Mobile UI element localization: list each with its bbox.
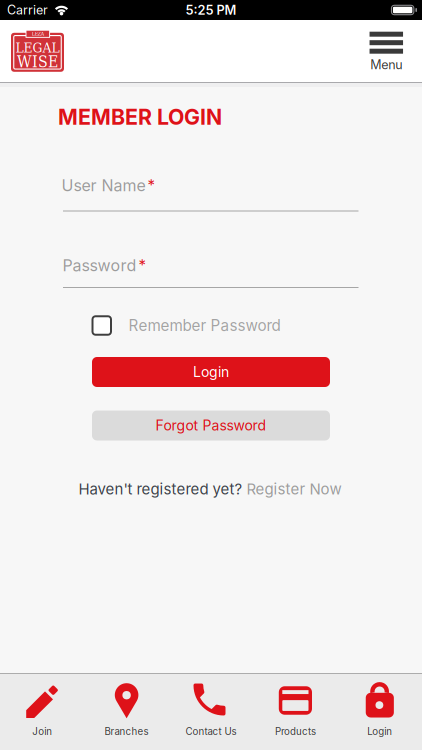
staticText: LEGAL — [15, 40, 59, 56]
staticText: Products — [275, 725, 316, 737]
staticText: Login — [193, 363, 229, 380]
staticText: Contact Us — [185, 725, 236, 737]
staticText: User Name — [61, 176, 145, 195]
staticText: 5:25 PM — [185, 2, 236, 18]
staticText: Login — [367, 725, 392, 737]
staticText: Remember Password — [128, 316, 280, 335]
staticText: Branches — [105, 725, 149, 737]
button[interactable]: Menu — [370, 32, 403, 72]
staticText: Menu — [370, 57, 402, 72]
staticText: Register Now — [246, 480, 341, 498]
button[interactable]: Register Now — [246, 480, 341, 498]
staticText: Join — [32, 725, 52, 737]
button[interactable]: Remember Password — [91, 315, 280, 336]
button[interactable]: Login — [92, 357, 330, 387]
staticText: WISE — [17, 53, 58, 71]
button[interactable]: Join — [0, 674, 84, 750]
staticText: LEZA — [32, 31, 44, 37]
staticText: Password — [62, 256, 136, 275]
button[interactable]: Forgot Password — [92, 410, 330, 440]
staticText: MEMBER LOGIN — [58, 104, 222, 130]
staticText: * — [138, 256, 146, 274]
button[interactable]: Login — [338, 674, 422, 750]
staticText: Haven't registered yet? — [78, 480, 242, 498]
button[interactable]: Products — [253, 674, 338, 750]
staticText: * — [147, 176, 155, 194]
button[interactable]: Branches — [84, 674, 169, 750]
button[interactable]: Contact Us — [169, 674, 253, 750]
staticText: Forgot Password — [155, 417, 266, 434]
staticText: Carrier — [7, 2, 48, 17]
